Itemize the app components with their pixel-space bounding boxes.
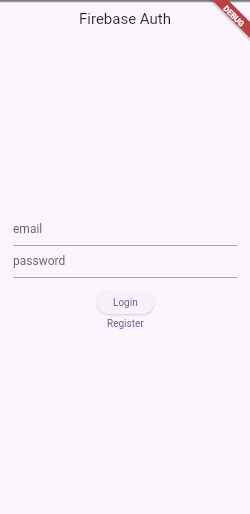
staticText: Register [107, 318, 144, 330]
staticText: password [13, 254, 66, 268]
staticText: Firebase Auth [79, 10, 171, 28]
button[interactable]: Register [101, 315, 150, 333]
other: Debug banner [198, 0, 250, 52]
staticText: DEBUG [221, 4, 246, 29]
button[interactable]: Login [97, 291, 154, 314]
staticText: Login [113, 297, 138, 309]
staticText: email [13, 222, 43, 236]
